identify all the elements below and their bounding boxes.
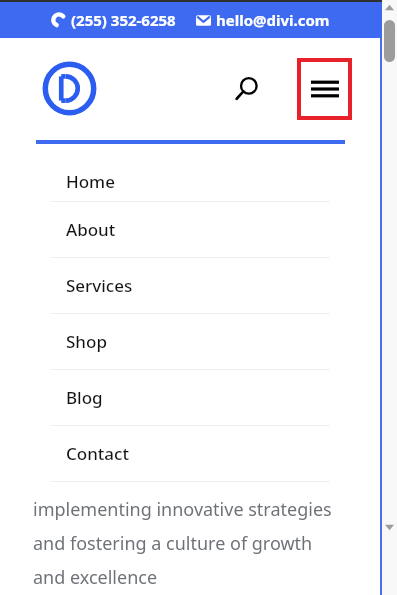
button[interactable]: Contact [36,426,345,481]
button[interactable]: Home [36,161,345,201]
staticText: implementing innovative strategies [33,497,332,522]
staticText: (255) 352-6258 [71,10,176,30]
button[interactable]: Email hello@divi.com [196,10,330,30]
staticText: Services [66,274,133,297]
staticText: hello@divi.com [216,10,330,30]
staticText: Blog [66,386,103,409]
staticText: Shop [66,330,107,353]
button[interactable]: Scrollbar thumb [384,20,395,62]
staticText: and fostering a culture of growth [33,531,313,556]
button[interactable]: Shop [36,314,345,369]
button[interactable]: Scroll down [382,520,397,535]
button[interactable]: Open menu [301,62,348,116]
staticText: Home [66,170,115,193]
button[interactable]: Call (255) 352-6258 [52,10,176,30]
button[interactable]: Blog [36,370,345,425]
staticText: About [66,218,116,241]
button[interactable]: Search [228,70,266,108]
staticText: Contact [66,442,129,465]
button[interactable]: Scroll up [382,0,397,15]
button[interactable]: Services [36,258,345,313]
button[interactable]: Divi home [42,61,97,116]
button[interactable]: About [36,202,345,257]
staticText: and excellence [33,565,158,590]
